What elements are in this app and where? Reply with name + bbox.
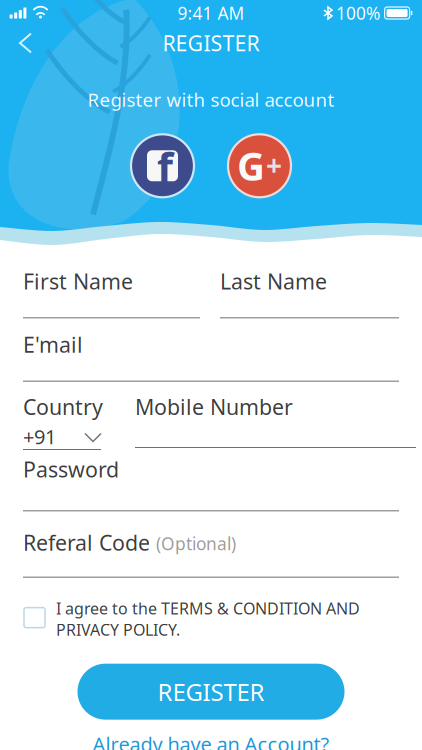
staticText: Referal Code (23, 528, 150, 557)
staticText: REGISTER (157, 676, 264, 708)
staticText: Mobile Number (135, 393, 293, 421)
staticText: 100% (336, 1, 380, 24)
staticText: E'mail (23, 330, 83, 359)
button[interactable]: REGISTER (77, 664, 344, 720)
button[interactable]: Register with Google Plus (226, 133, 292, 199)
staticText: +91 (23, 423, 56, 450)
staticText: Register with social account (87, 87, 334, 112)
button[interactable]: Register with Facebook (129, 133, 195, 199)
staticText: First Name (23, 267, 133, 295)
staticText: G (237, 140, 265, 191)
staticText: Password (23, 455, 119, 483)
staticText: I agree to the TERMS & CONDITION AND PRI… (56, 598, 360, 640)
staticText: + (266, 146, 282, 183)
staticText: Last Name (220, 267, 327, 295)
button[interactable]: Back (0, 27, 45, 58)
button[interactable]: I agree to the TERMS & CONDITION AND PRI… (0, 598, 422, 642)
staticText: Already have an Account? (92, 731, 329, 750)
staticText: Country (23, 393, 103, 421)
staticText: REGISTER (162, 29, 259, 57)
staticText: 9:41 AM (177, 1, 244, 24)
staticText: (Optional) (156, 532, 236, 555)
staticText: f (157, 139, 173, 194)
button[interactable]: Already have an Account? (92, 731, 329, 750)
